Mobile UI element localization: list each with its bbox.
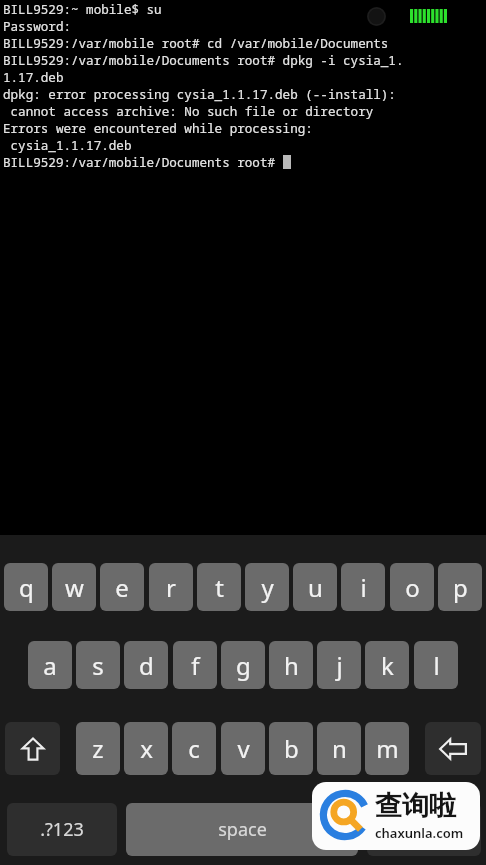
button[interactable]: m xyxy=(365,722,409,775)
staticText: 1.17.deb xyxy=(3,69,64,86)
staticText: o xyxy=(405,571,420,604)
staticText: k xyxy=(381,649,394,682)
staticText: Password: xyxy=(3,18,72,35)
staticText: c xyxy=(188,732,200,765)
staticText: a xyxy=(43,649,57,682)
staticText: p xyxy=(453,571,468,604)
button[interactable]: y xyxy=(245,563,289,611)
staticText: cysia_1.1.17.deb xyxy=(3,137,132,154)
button[interactable]: j xyxy=(317,641,361,689)
button[interactable]: c xyxy=(172,722,216,775)
button[interactable]: k xyxy=(365,641,409,689)
staticText: x xyxy=(140,732,153,765)
button[interactable]: i xyxy=(341,563,385,611)
staticText: y xyxy=(261,571,274,604)
staticText: v xyxy=(237,732,250,765)
button[interactable]: w xyxy=(52,563,96,611)
staticText: BILL9529:/var/mobile/Documents root# xyxy=(3,154,283,171)
staticText: r xyxy=(166,571,176,604)
staticText: z xyxy=(92,732,104,765)
staticText: f xyxy=(191,649,200,682)
button[interactable]: Backspace xyxy=(425,722,481,775)
staticText: .?123 xyxy=(40,817,84,842)
button[interactable]: u xyxy=(293,563,337,611)
staticText: Errors were encountered while processing… xyxy=(3,120,313,137)
button[interactable]: x xyxy=(124,722,168,775)
staticText: d xyxy=(139,649,154,682)
staticText: m xyxy=(376,732,399,765)
button[interactable]: z xyxy=(76,722,120,775)
staticText: BILL9529:/var/mobile/Documents root# dpk… xyxy=(3,52,404,69)
button[interactable]: o xyxy=(390,563,434,611)
button[interactable]: g xyxy=(221,641,265,689)
staticText: w xyxy=(65,571,84,604)
staticText: cannot access archive: No such file or d… xyxy=(3,103,374,120)
staticText: n xyxy=(332,732,347,765)
button[interactable]: h xyxy=(269,641,313,689)
button[interactable]: r xyxy=(149,563,193,611)
staticText: u xyxy=(308,571,323,604)
staticText: chaxunla.com xyxy=(375,824,464,842)
staticText: BILL9529:/var/mobile root# cd /var/mobil… xyxy=(3,35,389,52)
button[interactable]: b xyxy=(269,722,313,775)
button[interactable]: e xyxy=(100,563,144,611)
button[interactable]: q xyxy=(4,563,48,611)
button[interactable]: s xyxy=(76,641,120,689)
staticText: space xyxy=(218,817,267,842)
staticText: i xyxy=(360,571,367,604)
staticText: e xyxy=(115,571,129,604)
button[interactable]: l xyxy=(414,641,458,689)
button[interactable]: a xyxy=(28,641,72,689)
button[interactable]: p xyxy=(438,563,482,611)
button[interactable]: n xyxy=(317,722,361,775)
button[interactable]: t xyxy=(197,563,241,611)
button[interactable]: f xyxy=(173,641,217,689)
staticText: h xyxy=(284,649,299,682)
button[interactable]: v xyxy=(221,722,265,775)
staticText: dpkg: error processing cysia_1.1.17.deb … xyxy=(3,86,396,103)
staticText: g xyxy=(236,649,251,682)
staticText: BILL9529:~ mobile$ su xyxy=(3,1,162,18)
staticText: b xyxy=(284,732,299,765)
button[interactable]: Shift xyxy=(5,722,60,775)
button[interactable]: .?123 xyxy=(7,803,117,856)
staticText: s xyxy=(92,649,104,682)
button[interactable]: space xyxy=(126,803,358,856)
button[interactable]: Return xyxy=(367,803,481,856)
staticText: 查询啦 xyxy=(375,789,456,823)
staticText: q xyxy=(19,571,34,604)
staticText: l xyxy=(433,649,440,682)
staticText: j xyxy=(336,649,343,682)
button[interactable]: d xyxy=(124,641,168,689)
staticText: t xyxy=(215,571,224,604)
